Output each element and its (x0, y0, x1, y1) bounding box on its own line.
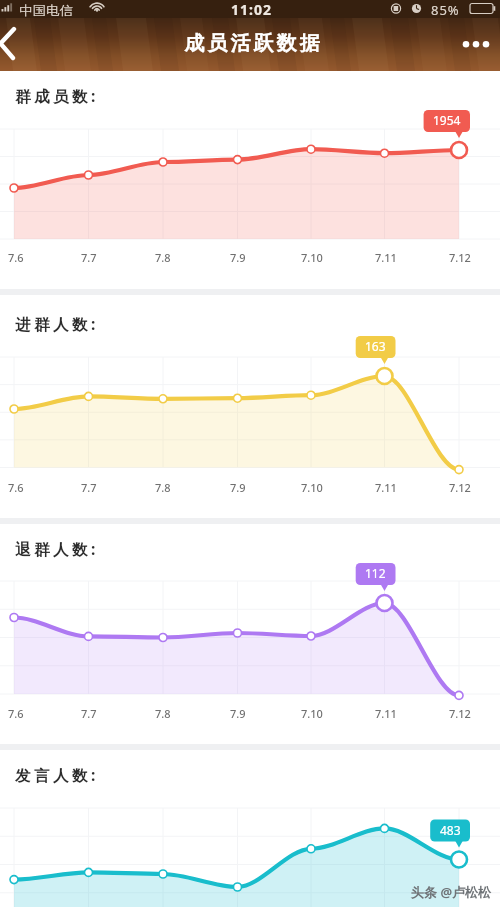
button[interactable]: Back (0, 24, 38, 62)
staticText: 7.11 (375, 706, 397, 721)
staticText: 群成员数: (15, 85, 99, 106)
staticText: 7.12 (449, 480, 471, 495)
staticText: 7.12 (449, 250, 471, 265)
staticText: 7.8 (155, 250, 171, 265)
staticText: 退群人数: (15, 538, 99, 559)
staticText: 头条 @卢松松 (411, 883, 492, 901)
staticText: 成员活跃数据 (183, 31, 321, 56)
staticText: 112 (365, 565, 386, 581)
staticText: 85% (431, 1, 460, 19)
staticText: 7.9 (230, 706, 246, 721)
staticText: 7.10 (301, 480, 323, 495)
staticText: 483 (440, 822, 461, 838)
staticText: 发言人数: (15, 764, 99, 785)
staticText: 7.8 (155, 480, 171, 495)
staticText: 163 (365, 338, 386, 354)
staticText: 7.7 (81, 250, 97, 265)
staticText: 1954 (433, 112, 461, 128)
staticText: 7.10 (301, 706, 323, 721)
staticText: 7.6 (8, 706, 24, 721)
staticText: 7.7 (81, 480, 97, 495)
staticText: 7.6 (8, 480, 24, 495)
staticText: 11:02 (231, 0, 272, 18)
staticText: 7.8 (155, 706, 171, 721)
staticText: 进群人数: (15, 313, 99, 334)
staticText: 7.7 (81, 706, 97, 721)
staticText: 7.12 (449, 706, 471, 721)
button[interactable]: More options (452, 26, 496, 70)
staticText: 7.9 (230, 480, 246, 495)
staticText: 7.10 (301, 250, 323, 265)
staticText: 7.11 (375, 480, 397, 495)
staticText: 中国电信 (19, 2, 73, 18)
staticText: 7.6 (8, 250, 24, 265)
staticText: 7.9 (230, 250, 246, 265)
staticText: 7.11 (375, 250, 397, 265)
